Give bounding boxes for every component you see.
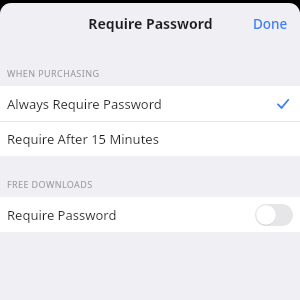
button[interactable]: Done bbox=[241, 9, 300, 39]
staticText: Done bbox=[253, 15, 288, 33]
button[interactable]: Require After 15 Minutes bbox=[0, 122, 300, 156]
button[interactable]: Always Require Password bbox=[0, 86, 300, 121]
button[interactable]: Require Password toggle bbox=[255, 204, 293, 226]
staticText: Require Password bbox=[88, 14, 213, 33]
staticText: Require After 15 Minutes bbox=[7, 130, 159, 148]
staticText: Always Require Password bbox=[7, 95, 162, 113]
staticText: FREE DOWNLOADS bbox=[7, 178, 93, 190]
staticText: Require Password bbox=[7, 206, 117, 224]
button[interactable]: Require Password bbox=[0, 197, 300, 232]
staticText: WHEN PURCHASING bbox=[7, 67, 100, 79]
